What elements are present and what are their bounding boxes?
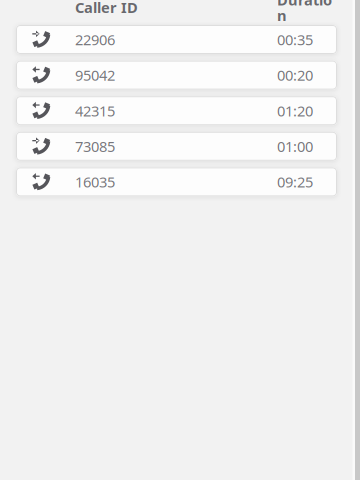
staticText: Caller ID xyxy=(75,0,138,17)
staticText: 22906 xyxy=(75,30,115,49)
staticText: 73085 xyxy=(75,137,115,156)
button[interactable]: 16035 xyxy=(16,167,337,196)
staticText: n xyxy=(277,6,287,25)
button[interactable]: 42315 xyxy=(16,96,337,125)
button[interactable]: 95042 xyxy=(16,61,337,90)
staticText: Duratio xyxy=(277,0,332,9)
staticText: 42315 xyxy=(75,101,115,120)
staticText: 09:25 xyxy=(277,172,313,192)
staticText: 16035 xyxy=(75,172,115,192)
staticText: 00:35 xyxy=(277,30,313,49)
button[interactable]: 22906 xyxy=(16,25,337,54)
staticText: 01:00 xyxy=(277,137,313,156)
staticText: 01:20 xyxy=(277,101,313,120)
button[interactable]: 73085 xyxy=(16,132,337,161)
staticText: 95042 xyxy=(75,65,115,85)
staticText: 00:20 xyxy=(277,65,313,85)
